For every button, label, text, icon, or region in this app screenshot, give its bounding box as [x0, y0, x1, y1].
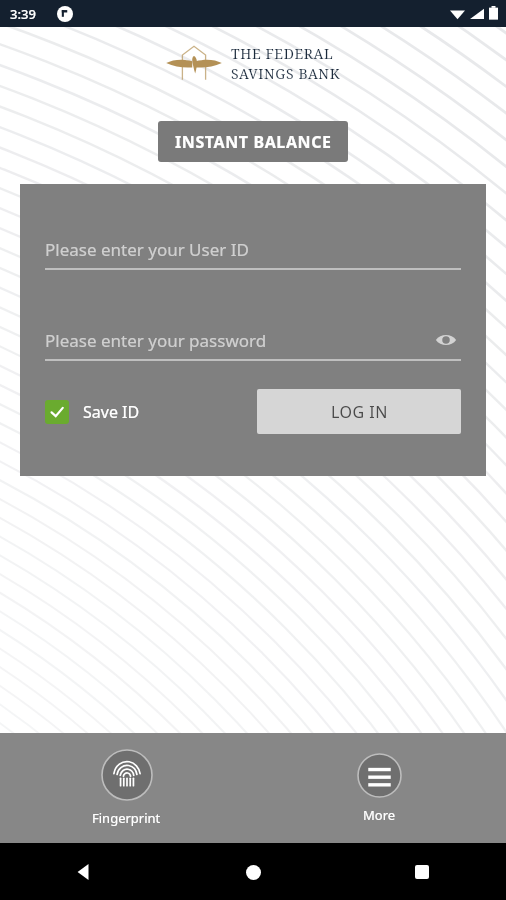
button[interactable]: Please enter your password — [45, 321, 461, 359]
button[interactable]: LOG IN — [257, 389, 461, 434]
staticText: Save ID — [83, 401, 140, 423]
staticText: THE FEDERAL — [231, 44, 334, 63]
staticText: Fingerprint — [92, 809, 161, 827]
button[interactable]: Home — [233, 852, 273, 892]
button[interactable]: Show password — [431, 325, 461, 355]
staticText: 3:39 — [10, 5, 36, 23]
button[interactable]: Fingerprint login — [88, 745, 165, 831]
staticText: Please enter your User ID — [45, 238, 249, 261]
button[interactable]: Save ID — [45, 400, 140, 424]
staticText: INSTANT BALANCE — [175, 131, 332, 153]
button[interactable]: Please enter your User ID — [45, 230, 461, 268]
staticText: Please enter your password — [45, 329, 267, 352]
button[interactable]: More options — [353, 749, 406, 828]
staticText: LOG IN — [331, 401, 388, 423]
button[interactable]: INSTANT BALANCE — [158, 121, 348, 162]
button[interactable]: Back — [64, 852, 104, 892]
button[interactable]: Recent apps — [402, 852, 442, 892]
staticText: SAVINGS BANK — [231, 64, 341, 83]
staticText: More — [363, 806, 396, 824]
